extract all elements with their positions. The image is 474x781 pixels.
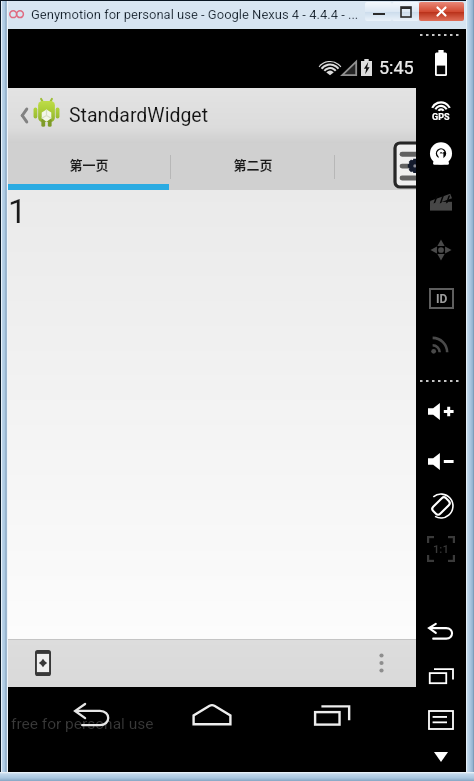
button[interactable]: Camera: [416, 132, 466, 179]
button[interactable]: Back: [416, 608, 466, 654]
button[interactable]: Menu: [416, 698, 466, 742]
staticText: StandardWidget: [69, 104, 209, 127]
button[interactable]: Settings: [395, 143, 416, 187]
staticText: free for personal use: [11, 715, 154, 733]
button[interactable]: Recent apps: [302, 692, 362, 738]
staticText: 第一页: [69, 155, 109, 174]
staticText: 1:1: [433, 543, 449, 556]
button[interactable]: Window: [392, 2, 419, 21]
button[interactable]: More: [416, 742, 466, 772]
button[interactable]: Battery: [416, 38, 466, 88]
button[interactable]: Navigation: [416, 226, 466, 274]
button[interactable]: Recents: [416, 654, 466, 698]
button[interactable]: Rotate: [416, 485, 466, 526]
button[interactable]: Device widget: [21, 641, 65, 685]
button[interactable]: Identifiers: [416, 274, 466, 322]
staticText: Genymotion for personal use - Google Nex…: [31, 7, 359, 22]
button[interactable]: Volume up: [416, 384, 466, 438]
button[interactable]: Volume down: [416, 438, 466, 485]
button[interactable]: Window: [365, 2, 392, 21]
button[interactable]: 第二页: [171, 143, 334, 190]
button[interactable]: Close: [419, 2, 464, 21]
button[interactable]: StandardWidget: [8, 88, 416, 143]
button[interactable]: 第一页: [8, 143, 170, 190]
staticText: GPS: [432, 112, 450, 123]
button[interactable]: Network: [416, 322, 466, 366]
button[interactable]: Screen size: [416, 526, 466, 571]
staticText: 第二页: [233, 155, 273, 174]
button[interactable]: Home: [182, 692, 242, 738]
button[interactable]: Back: [62, 692, 122, 738]
button[interactable]: GPS: [416, 88, 466, 132]
button[interactable]: More options: [366, 641, 396, 685]
staticText: 5:45: [379, 57, 414, 78]
staticText: ID: [436, 292, 448, 306]
staticText: 1: [8, 192, 27, 231]
button[interactable]: Video: [416, 179, 466, 226]
